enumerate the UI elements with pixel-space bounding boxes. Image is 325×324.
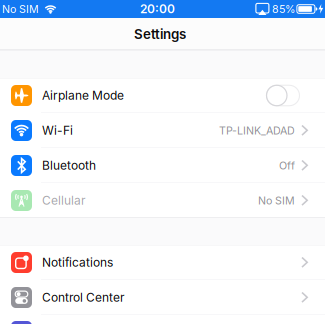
staticText: Bluetooth — [42, 158, 96, 173]
staticText: Control Center — [42, 290, 125, 305]
staticText: 85% — [272, 3, 295, 15]
staticText: Notifications — [42, 255, 113, 270]
staticText: Settings — [134, 26, 186, 42]
staticText: No SIM — [258, 194, 295, 207]
staticText: Wi-Fi — [42, 123, 73, 138]
staticText: TP-LINK_ADAD — [219, 124, 295, 137]
staticText: No SIM — [2, 3, 39, 15]
button[interactable]: Control Center — [0, 280, 325, 315]
button[interactable]: Wi-Fi — [0, 113, 325, 148]
staticText: Cellular — [42, 193, 86, 208]
staticText: 20:00 — [140, 2, 175, 16]
button[interactable]: Cellular — [0, 183, 325, 218]
button[interactable]: Notifications — [0, 245, 325, 280]
button[interactable]: Bluetooth — [0, 148, 325, 183]
staticText: Off — [279, 159, 295, 172]
staticText: Airplane Mode — [42, 88, 124, 103]
button[interactable]: Airplane Mode — [266, 84, 300, 106]
